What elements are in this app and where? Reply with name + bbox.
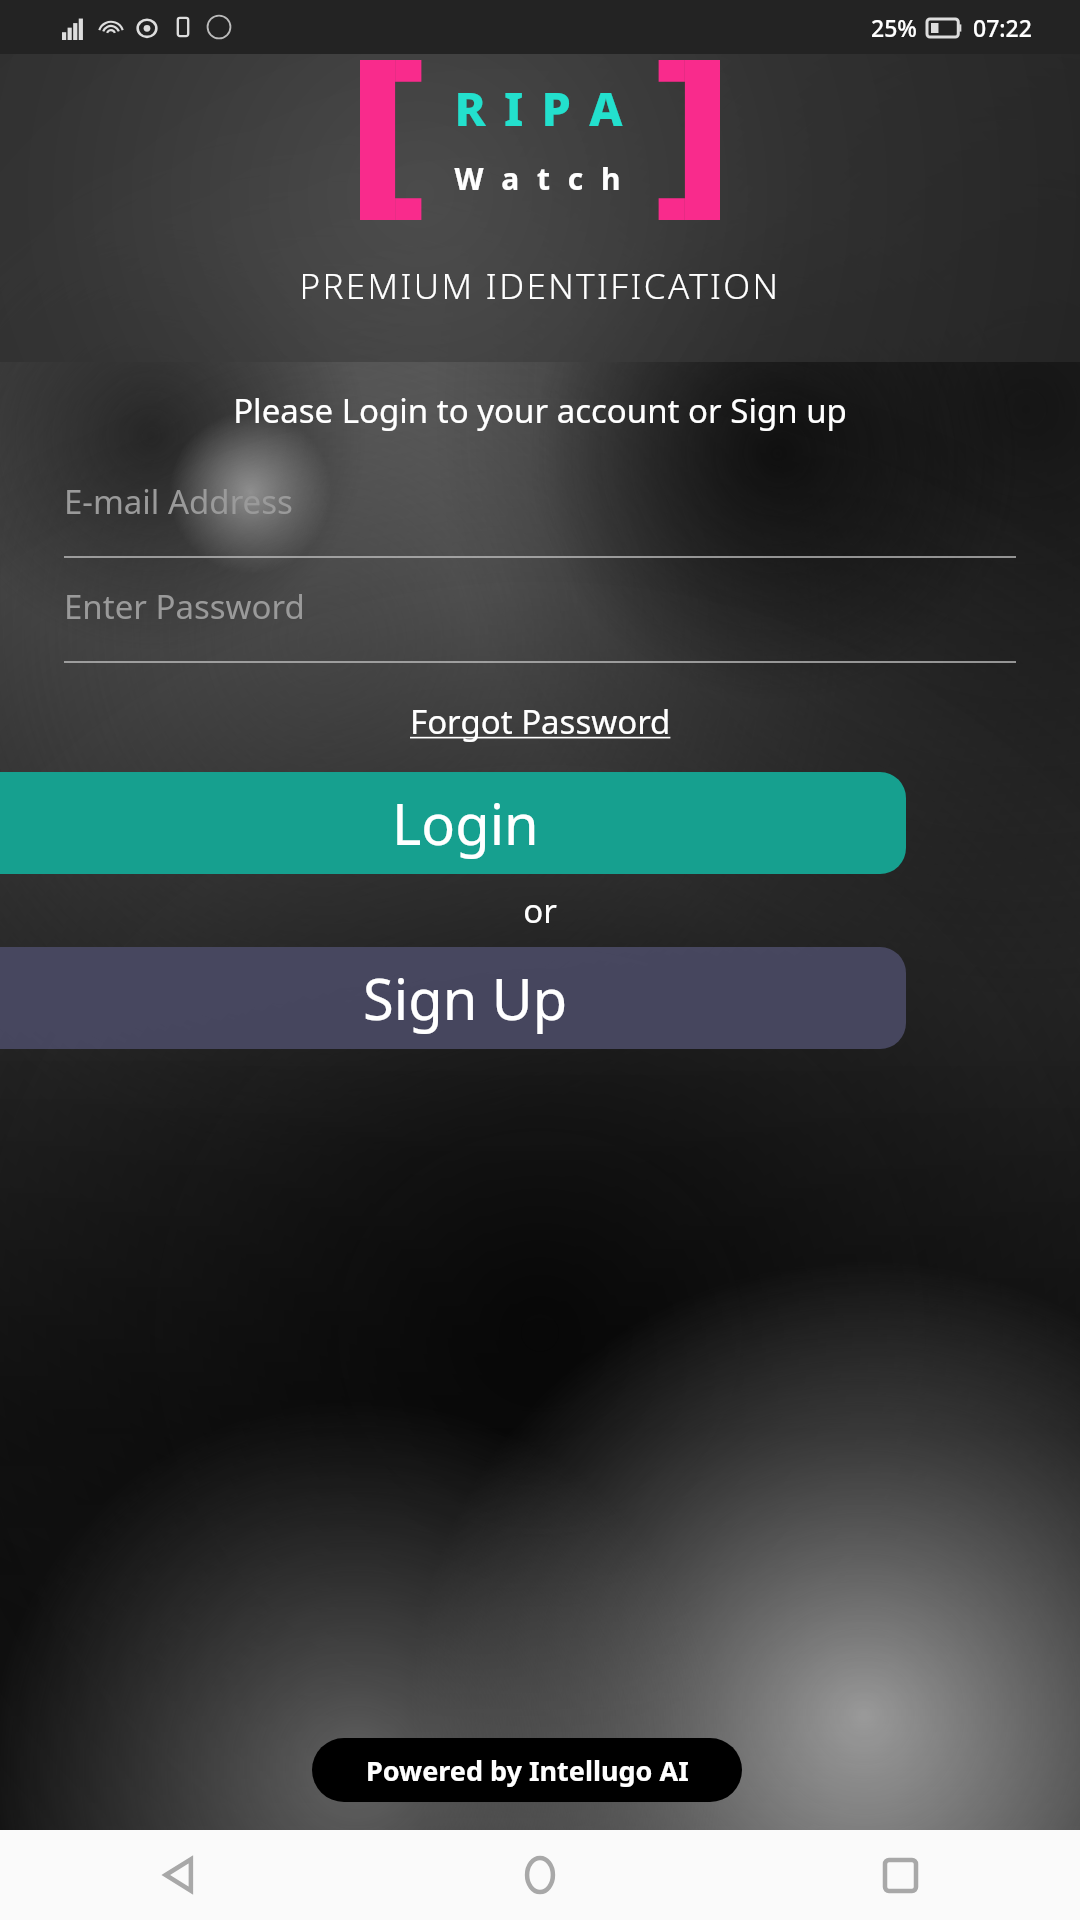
button[interactable]: Home [360,1830,720,1920]
button[interactable]: Back [0,1830,360,1920]
staticText: W a t c h [454,158,626,199]
staticText: Please Login to your account or Sign up [0,388,1080,433]
button[interactable]: E-mail Address [0,479,1080,558]
staticText: R I P A [454,76,626,140]
staticText: Sign Up [363,960,568,1036]
button[interactable]: Sign Up [0,947,906,1049]
staticText: 07:22 [973,12,1032,43]
staticText: Powered by Intellugo AI [366,1752,689,1789]
button[interactable]: Forgot Password [400,695,681,748]
staticText: 25% [871,12,917,43]
staticText: Enter Password [64,584,305,629]
staticText: PREMIUM IDENTIFICATION [299,262,781,310]
staticText: E-mail Address [64,479,293,524]
button[interactable]: Enter Password [0,584,1080,663]
staticText: Login [392,785,539,861]
button[interactable]: Login [0,772,906,874]
staticText: or [0,888,1080,933]
button[interactable]: Powered by Intellugo AI [312,1738,742,1802]
button[interactable]: Recent apps [720,1830,1080,1920]
